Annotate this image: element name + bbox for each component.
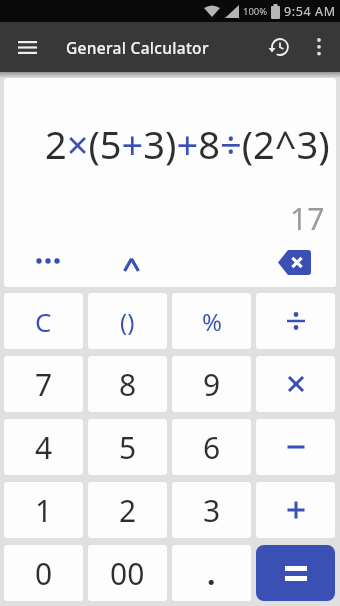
staticText: C [35,304,52,339]
staticText: 2 [119,490,137,531]
button[interactable]: 0 [4,545,83,601]
button[interactable] [256,293,335,349]
staticText: 2×(5+3)+8÷(2^3) [45,118,330,170]
button[interactable] [28,243,72,279]
button[interactable]: 4 [4,419,83,475]
staticText: 9 [203,364,221,405]
button[interactable]: 00 [88,545,167,601]
button[interactable] [109,243,153,285]
staticText: % [202,305,222,338]
button[interactable]: 6 [172,419,251,475]
button[interactable]: C [4,293,83,349]
button[interactable] [8,28,46,66]
button[interactable] [256,356,335,412]
button[interactable] [302,30,336,64]
button[interactable]: . [172,545,251,601]
button[interactable]: 2 [88,482,167,538]
staticText: 4 [35,427,53,468]
button[interactable]: () [88,293,167,349]
staticText: 9:54 AM [284,3,336,20]
staticText: 3 [203,490,221,531]
button[interactable] [256,545,335,601]
staticText: 8 [119,364,137,405]
staticText: 0 [35,553,53,594]
staticText: 5 [119,427,137,468]
staticText: 17 [290,198,325,239]
button[interactable]: 9 [172,356,251,412]
button[interactable]: 5 [88,419,167,475]
button[interactable]: 3 [172,482,251,538]
button[interactable] [256,482,335,538]
staticText: () [120,305,135,338]
button[interactable]: 7 [4,356,83,412]
staticText: . [207,553,216,594]
staticText: 100% [243,5,268,18]
staticText: 7 [35,364,53,405]
staticText: General Calculator [66,37,209,58]
button[interactable] [271,243,317,281]
staticText: 1 [35,490,53,531]
button[interactable]: 8 [88,356,167,412]
staticText: 00 [110,553,145,594]
button[interactable] [259,27,299,67]
button[interactable]: % [172,293,251,349]
button[interactable]: 1 [4,482,83,538]
staticText: 6 [203,427,221,468]
button[interactable] [256,419,335,475]
